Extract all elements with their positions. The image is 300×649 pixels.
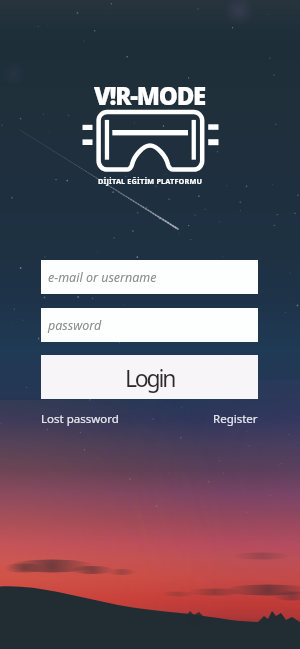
button[interactable]: Login: [41, 355, 258, 399]
button[interactable]: password: [41, 308, 258, 342]
staticText: password: [48, 317, 102, 334]
button[interactable]: Register: [213, 409, 258, 429]
staticText: V!R-MODE: [94, 79, 206, 112]
button[interactable]: Lost password: [41, 409, 119, 429]
staticText: DİJİTAL EĞİTİM PLATFORMU: [98, 176, 203, 186]
staticText: Lost password: [41, 411, 119, 427]
staticText: e-mail or username: [48, 269, 157, 286]
staticText: Register: [213, 411, 258, 427]
button[interactable]: e-mail or username: [41, 260, 258, 294]
staticText: Login: [125, 362, 175, 393]
